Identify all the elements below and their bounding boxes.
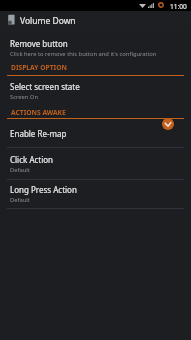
button[interactable]: Select screen state (0, 81, 191, 101)
staticText: Enable Re-map (10, 128, 67, 139)
staticText: Remove button (10, 38, 68, 49)
button[interactable]: Click Action (0, 154, 191, 174)
staticText: Click here to remove this button and it'… (10, 50, 157, 58)
staticText: Default (10, 166, 30, 174)
staticText: Long Press Action (10, 184, 77, 195)
staticText: Volume Down (20, 15, 76, 27)
staticText: Screen On (10, 93, 38, 101)
button[interactable]: Remove button (0, 38, 191, 58)
staticText: Default (10, 196, 30, 204)
staticText: 11:00 (170, 2, 187, 11)
staticText: DISPLAY OPTION (11, 63, 67, 72)
staticText: Click Action (10, 154, 54, 165)
button[interactable]: Enable Re-map (0, 119, 191, 144)
staticText: Select screen state (10, 81, 80, 92)
button[interactable]: Long Press Action (0, 184, 191, 204)
staticText: ACTIONS AWAKE (11, 108, 66, 117)
